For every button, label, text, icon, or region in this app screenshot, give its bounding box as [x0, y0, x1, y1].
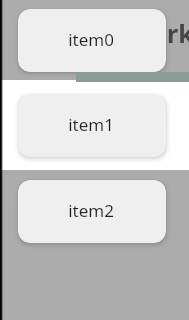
button[interactable]: item0: [18, 9, 166, 72]
button[interactable]: item2: [18, 180, 166, 243]
staticText: item0: [68, 28, 114, 51]
staticText: item2: [68, 199, 114, 222]
other: Screen edge: [0, 0, 3, 320]
staticText: rk: [167, 16, 189, 50]
button[interactable]: item1: [18, 94, 166, 157]
staticText: item1: [68, 113, 114, 136]
